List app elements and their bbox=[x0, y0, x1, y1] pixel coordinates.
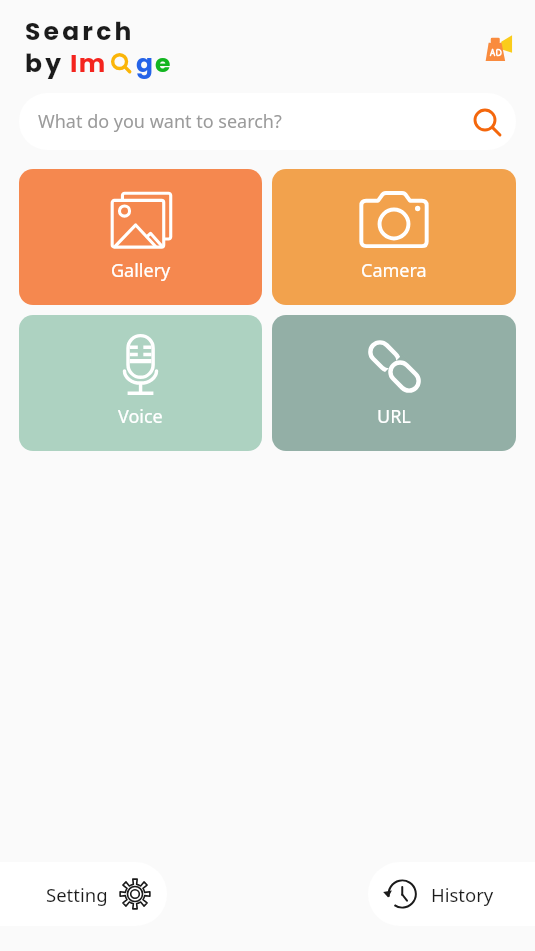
staticText: What do you want to search? bbox=[38, 109, 282, 134]
staticText: Im bbox=[70, 46, 107, 81]
staticText: e bbox=[155, 46, 172, 81]
button[interactable]: History bbox=[368, 862, 535, 926]
button[interactable]: Voice bbox=[19, 315, 262, 451]
staticText: Gallery bbox=[111, 258, 171, 283]
staticText: URL bbox=[377, 404, 411, 429]
staticText: Setting bbox=[46, 882, 108, 907]
staticText: History bbox=[431, 882, 494, 907]
staticText: Search bbox=[25, 14, 135, 49]
staticText: by bbox=[25, 46, 65, 81]
staticText: g bbox=[136, 46, 155, 81]
button[interactable]: Ads bbox=[484, 34, 514, 64]
button[interactable]: Gallery bbox=[19, 169, 262, 305]
button[interactable]: Setting bbox=[0, 862, 167, 926]
staticText: Camera bbox=[361, 258, 427, 283]
staticText: Voice bbox=[118, 404, 163, 429]
button[interactable]: Camera bbox=[272, 169, 516, 305]
button[interactable]: What do you want to search? bbox=[19, 93, 516, 150]
button[interactable]: Search bbox=[469, 104, 505, 140]
button[interactable]: URL bbox=[272, 315, 516, 451]
